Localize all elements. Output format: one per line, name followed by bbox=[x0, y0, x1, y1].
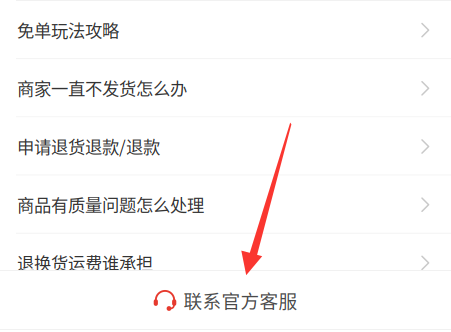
button[interactable]: 免单玩法攻略 bbox=[0, 1, 451, 59]
button[interactable]: 申请退货退款/退款 bbox=[0, 117, 451, 176]
button[interactable]: 联系官方客服 bbox=[0, 269, 451, 332]
button[interactable]: 商品有质量问题怎么处理 bbox=[0, 176, 451, 234]
staticText: 退换货运费谁承担 bbox=[17, 250, 153, 275]
button[interactable]: 商家一直不发货怎么办 bbox=[0, 59, 451, 117]
staticText: 商品有质量问题怎么处理 bbox=[17, 192, 204, 217]
staticText: 商家一直不发货怎么办 bbox=[17, 75, 187, 100]
staticText: 联系官方客服 bbox=[183, 286, 297, 313]
button[interactable]: 退换货运费谁承担 bbox=[0, 234, 451, 292]
staticText: 免单玩法攻略 bbox=[17, 17, 119, 42]
staticText: 申请退货退款/退款 bbox=[17, 133, 160, 159]
